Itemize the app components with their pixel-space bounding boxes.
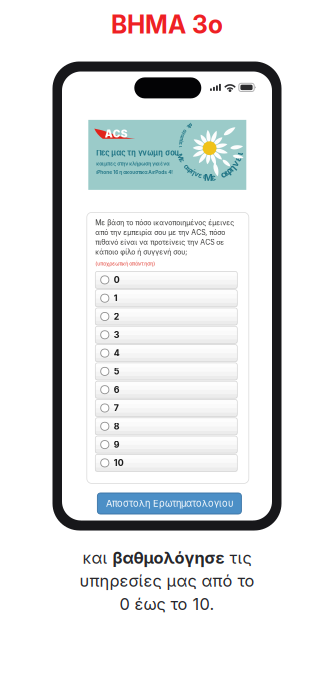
staticText: ε [187, 124, 190, 130]
staticText: υπηρεσίες μας από το [79, 571, 254, 590]
button[interactable]: 7 [95, 399, 237, 417]
staticText: ι [180, 144, 181, 149]
staticText: ν [194, 170, 198, 178]
staticText: α [181, 133, 184, 139]
button[interactable]: 10 [95, 454, 237, 471]
staticText: iPhone 16 ή ακουστικά AirPods 4! [96, 169, 173, 175]
staticText: 6 [114, 384, 120, 395]
staticText: π [180, 136, 183, 141]
staticText: Αποστολή Ερωτηματολογίου [106, 498, 233, 509]
staticText [186, 126, 187, 132]
staticText: 0 [114, 275, 120, 285]
button[interactable]: 5 [95, 363, 237, 380]
staticText: 5 [114, 366, 120, 377]
staticText: Μ [204, 172, 212, 183]
staticText: Μ [177, 153, 183, 161]
staticText: από την εμπειρία σου με την ACS, πόσο [95, 228, 225, 237]
staticText: Με βάση το πόσο ικανοποιημένος έμεινες [95, 219, 234, 227]
button[interactable]: 3 [95, 326, 237, 343]
staticText: 2 [114, 311, 120, 322]
staticText: ε [235, 153, 240, 164]
staticText: ACS [105, 128, 128, 140]
staticText: 9 [114, 439, 120, 450]
staticText: φ [225, 166, 232, 177]
staticText: 3 [114, 329, 120, 340]
staticText: ι [203, 172, 205, 180]
staticText [183, 160, 185, 168]
staticText: ε [211, 172, 216, 183]
staticText: και μπες στην κλήρωση για ένα [96, 161, 169, 167]
staticText: φ [187, 166, 192, 174]
button[interactable]: 0 [95, 271, 237, 288]
staticText: (υποχρεωτική απάντηση) [95, 260, 155, 267]
button[interactable]: 2 [95, 308, 237, 325]
staticText: α [184, 163, 189, 171]
staticText: Μ [188, 122, 192, 128]
button[interactable]: 1 [95, 290, 237, 307]
staticText: κάποιο φίλο ή συγγενή σου; [95, 248, 187, 256]
staticText: α [183, 128, 186, 134]
staticText [218, 171, 220, 182]
staticText: πιθανό είναι να προτείνεις την ACS σε [95, 238, 224, 246]
staticText: 7 [114, 403, 119, 413]
staticText: γ [182, 131, 185, 136]
staticText: ε [198, 171, 202, 179]
staticText: 10 [114, 458, 124, 468]
staticText: ή [229, 162, 235, 173]
staticText: 0 έως το 10. [119, 594, 214, 614]
staticText: ή [191, 168, 195, 176]
button[interactable]: Αποστολή Ερωτηματολογίου [97, 493, 241, 514]
staticText: α [221, 169, 227, 180]
staticText: ε [180, 156, 184, 164]
button[interactable]: 6 [95, 381, 237, 398]
button[interactable]: 9 [95, 436, 237, 453]
button[interactable]: 4 [95, 345, 237, 362]
staticText: 4 [114, 348, 120, 358]
staticText: ν [232, 158, 238, 169]
staticText: ά [179, 138, 182, 144]
staticText: 8 [114, 421, 120, 432]
button[interactable]: 8 [95, 418, 237, 435]
staticText: 1 [114, 293, 118, 303]
staticText: και βαθμολόγησε τις [82, 548, 251, 567]
staticText: Πες μας τη γνώμη σου [96, 148, 179, 157]
staticText: ι [238, 148, 241, 159]
staticText: ε [179, 141, 182, 147]
staticText: ΒΗΜΑ 3ο [111, 9, 223, 39]
